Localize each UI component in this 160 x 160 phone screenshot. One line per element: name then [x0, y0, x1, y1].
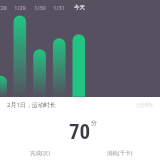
staticText: 70	[69, 120, 91, 145]
staticText: 分	[91, 119, 97, 127]
staticText: 1/28	[0, 4, 7, 11]
staticText: 1/30	[34, 4, 46, 11]
staticText: 今天	[74, 4, 85, 11]
staticText: 完成(次)	[30, 149, 50, 157]
staticText: (分钟)	[137, 101, 153, 109]
button[interactable]: 消耗(千卡)	[80, 145, 160, 160]
button[interactable]: 1/28	[0, 2, 13, 12]
button[interactable]: 1/31	[47, 2, 71, 12]
button[interactable]: 1/30	[28, 2, 52, 12]
button[interactable]: 1/29	[8, 2, 32, 12]
staticText: 1/31	[53, 4, 65, 11]
staticText: 消耗(千卡)	[107, 149, 133, 157]
staticText: 2月1日，运动时长	[7, 101, 56, 109]
button[interactable]: 完成(次)	[0, 145, 80, 160]
staticText: 1/29	[14, 4, 26, 11]
button[interactable]: 今天	[67, 2, 91, 12]
